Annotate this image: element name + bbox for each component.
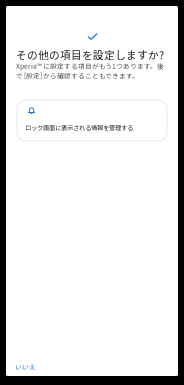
staticText: Xperia™ に設定する項目がもう1つあります。後で [設定] から確認するこ…	[16, 61, 164, 80]
button[interactable]: いいえ	[7, 357, 44, 377]
staticText: いいえ	[15, 362, 36, 372]
staticText: ロック画面に表示される情報を管理する	[25, 123, 133, 132]
button[interactable]: ロック画面に表示される情報を管理する	[17, 100, 167, 141]
staticText: その他の項目を設定しますか?	[16, 47, 164, 62]
